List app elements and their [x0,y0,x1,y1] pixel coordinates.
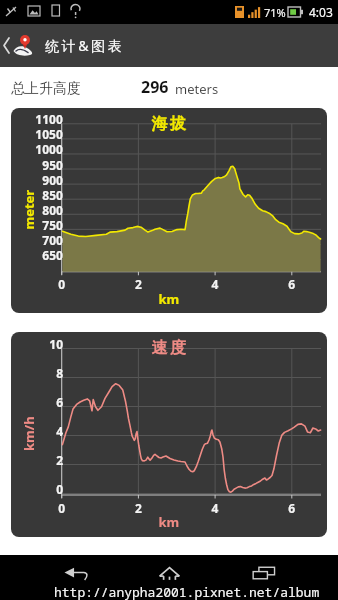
staticText: 71% [264,5,286,20]
button[interactable] [11,332,327,537]
button[interactable]: Home [139,555,199,591]
button[interactable]: Recent apps [233,555,293,591]
staticText: 296 [141,76,169,98]
staticText: 统计&图表 [45,36,125,55]
button[interactable]: Back [0,24,45,67]
staticText: 总上升高度 [11,80,81,98]
staticText: meters [175,80,219,98]
staticText: 4:03 [309,4,333,20]
button[interactable] [11,108,327,313]
staticText: http://anypha2001.pixnet.net/album [54,583,320,600]
button[interactable]: Back [46,555,106,591]
